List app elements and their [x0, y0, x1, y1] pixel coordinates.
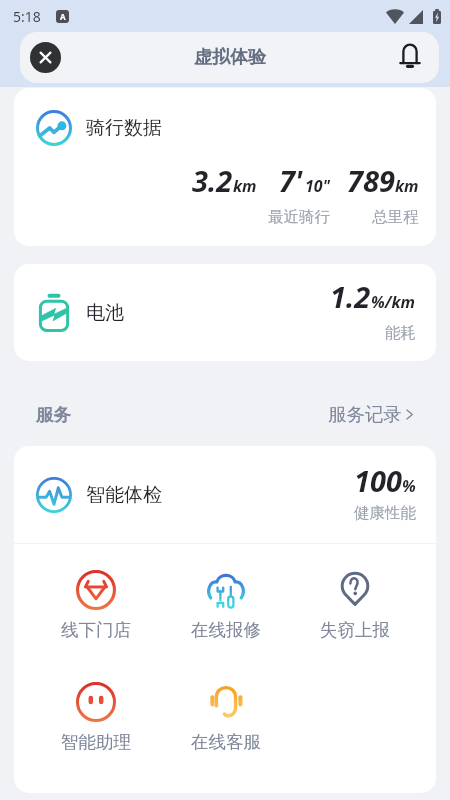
button[interactable]: 在线客服 — [161, 682, 290, 753]
staticText: 3.2 — [192, 161, 233, 200]
staticText: 虚拟体验 — [194, 46, 266, 69]
staticText: 失窃上报 — [320, 619, 390, 641]
staticText: 服务记录 — [328, 403, 402, 426]
staticText: 在线报修 — [191, 619, 261, 641]
staticText: 5:18 — [13, 7, 41, 26]
staticText: 最近骑行 — [268, 207, 330, 227]
staticText: 智能助理 — [61, 731, 131, 753]
button[interactable]: 线下门店 — [31, 570, 161, 641]
button[interactable]: Close — [30, 42, 61, 73]
staticText: 7' — [279, 161, 303, 200]
button[interactable]: 智能助理 — [31, 682, 161, 753]
staticText: 服务 — [36, 404, 71, 426]
staticText: 智能体检 — [86, 483, 162, 507]
button[interactable]: 智能体检 — [14, 446, 436, 543]
staticText: %/km — [371, 291, 416, 313]
staticText: 总里程 — [372, 207, 419, 227]
staticText: km — [233, 175, 257, 197]
staticText: 健康性能 — [354, 503, 416, 523]
button[interactable]: 骑行数据 — [14, 88, 436, 246]
staticText: 100 — [354, 461, 402, 500]
button[interactable]: 在线报修 — [161, 570, 290, 641]
staticText: 电池 — [86, 301, 124, 325]
button[interactable]: 服务记录 — [328, 403, 416, 426]
staticText: 10" — [305, 175, 330, 197]
staticText: 1.2 — [330, 277, 371, 316]
staticText: 能耗 — [385, 323, 416, 343]
button[interactable]: 电池 — [14, 264, 436, 361]
staticText: 线下门店 — [61, 619, 131, 641]
staticText: 789 — [347, 161, 395, 200]
staticText: % — [402, 475, 416, 497]
staticText: 骑行数据 — [86, 116, 162, 140]
staticText: 在线客服 — [191, 731, 261, 753]
button[interactable]: 失窃上报 — [290, 570, 419, 641]
button[interactable]: Notifications — [392, 37, 428, 73]
staticText: km — [395, 175, 419, 197]
staticText: A — [60, 11, 66, 22]
